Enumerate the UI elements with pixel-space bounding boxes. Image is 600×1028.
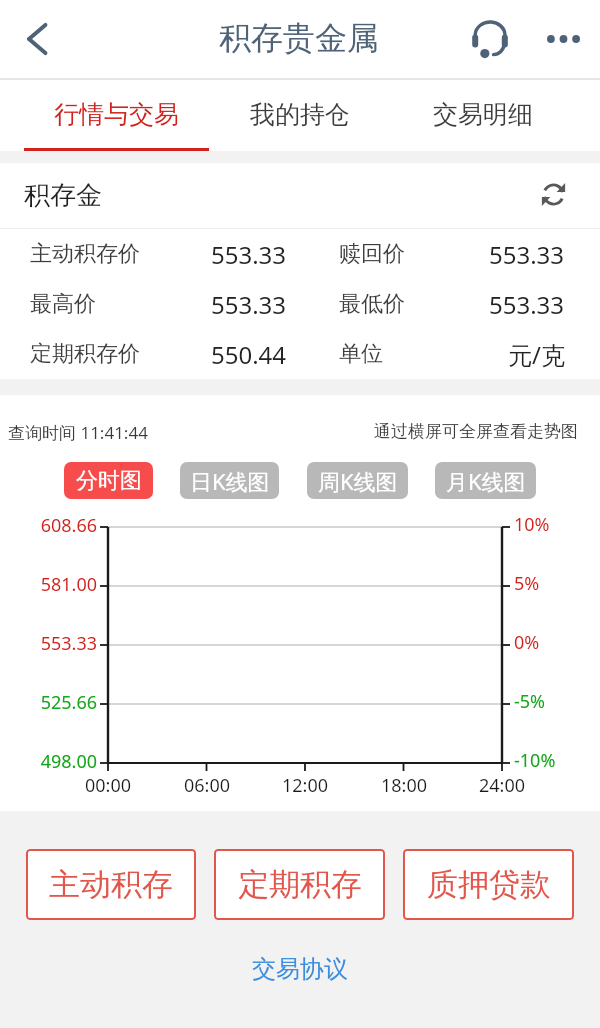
- button[interactable]: Back: [9, 0, 65, 77]
- button[interactable]: 定期积存: [214, 849, 385, 920]
- staticText: 553.33: [489, 288, 565, 321]
- staticText: 5%: [514, 571, 540, 596]
- staticText: 0%: [514, 630, 540, 655]
- staticText: -5%: [514, 689, 546, 714]
- button[interactable]: 行情与交易: [24, 77, 209, 151]
- staticText: 608.66: [40, 513, 97, 538]
- button[interactable]: 分时图: [64, 462, 153, 499]
- staticText: 赎回价: [339, 240, 405, 268]
- staticText: 周K线图: [318, 466, 398, 496]
- staticText: 日K线图: [190, 466, 270, 496]
- staticText: 10%: [514, 512, 550, 537]
- staticText: 553.33: [489, 238, 565, 271]
- staticText: 18:00: [381, 773, 428, 798]
- staticText: 00:00: [85, 773, 132, 798]
- staticText: 定期积存: [238, 865, 362, 904]
- staticText: 积存金: [24, 179, 102, 212]
- button[interactable]: 主动积存: [26, 849, 196, 920]
- staticText: -10%: [514, 748, 556, 773]
- staticText: 553.33: [211, 288, 287, 321]
- staticText: 最高价: [30, 290, 96, 318]
- staticText: 550.44: [211, 338, 287, 371]
- staticText: 525.66: [40, 690, 97, 715]
- button[interactable]: 质押贷款: [403, 849, 574, 920]
- button[interactable]: 交易协议: [234, 946, 366, 992]
- staticText: 月K线图: [446, 466, 526, 496]
- staticText: 主动积存价: [30, 240, 140, 268]
- button[interactable]: 月K线图: [435, 462, 536, 499]
- button[interactable]: Customer service: [450, 0, 530, 77]
- staticText: 06:00: [184, 773, 231, 798]
- button[interactable]: 我的持仓: [208, 77, 392, 151]
- button[interactable]: Refresh: [525, 166, 581, 222]
- button[interactable]: 日K线图: [180, 462, 279, 499]
- staticText: 12:00: [282, 773, 329, 798]
- button[interactable]: 交易明细: [391, 77, 575, 151]
- staticText: 元/克: [508, 338, 565, 371]
- staticText: 行情与交易: [54, 99, 179, 130]
- button[interactable]: More options: [537, 0, 589, 77]
- staticText: 质押贷款: [427, 865, 551, 904]
- staticText: 积存贵金属: [219, 18, 379, 58]
- staticText: 最低价: [339, 290, 405, 318]
- staticText: 553.33: [40, 631, 97, 656]
- staticText: 单位: [339, 340, 383, 368]
- staticText: 581.00: [40, 572, 97, 597]
- staticText: 我的持仓: [250, 99, 350, 130]
- staticText: 24:00: [479, 773, 526, 798]
- staticText: 定期积存价: [30, 340, 140, 368]
- button[interactable]: 周K线图: [307, 462, 408, 499]
- staticText: 查询时间 11:41:44: [8, 421, 148, 444]
- staticText: 交易协议: [252, 954, 348, 984]
- staticText: 主动积存: [49, 865, 173, 904]
- staticText: 分时图: [76, 467, 142, 495]
- staticText: 498.00: [40, 749, 97, 774]
- staticText: 交易明细: [433, 99, 533, 130]
- staticText: 通过横屏可全屏查看走势图: [374, 421, 578, 442]
- staticText: 553.33: [211, 238, 287, 271]
